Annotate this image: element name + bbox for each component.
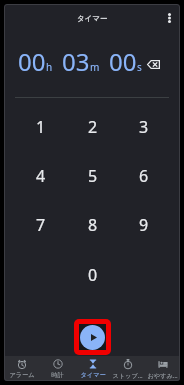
button[interactable]: 8 — [67, 203, 118, 246]
button[interactable]: 3 — [118, 105, 169, 148]
staticText: 4 — [36, 165, 46, 187]
staticText: 3 — [139, 116, 149, 138]
button[interactable]: More options — [161, 10, 177, 26]
staticText: 0 — [88, 264, 98, 286]
button[interactable]: 6 — [118, 154, 169, 197]
button[interactable]: 5 — [67, 154, 118, 197]
staticText: 2 — [88, 116, 98, 138]
button[interactable]: アラーム — [4, 356, 40, 381]
button[interactable]: 1 — [15, 105, 67, 148]
staticText: 1 — [36, 116, 46, 138]
button[interactable]: Delete — [144, 55, 163, 74]
button[interactable]: タイマー — [75, 356, 110, 381]
staticText: 5 — [88, 165, 98, 187]
staticText: h — [46, 60, 53, 74]
button[interactable]: 2 — [67, 105, 118, 148]
staticText: 8 — [88, 214, 98, 236]
staticText: 時計 — [51, 371, 64, 379]
button[interactable]: 時計 — [40, 356, 75, 381]
staticText: 7 — [36, 214, 46, 236]
staticText: s — [137, 60, 142, 74]
staticText: 00 — [109, 45, 137, 78]
staticText: ストップ… — [112, 371, 143, 379]
staticText: アラーム — [9, 371, 35, 379]
button[interactable]: 4 — [15, 154, 67, 197]
staticText: タイマー — [80, 371, 106, 379]
staticText: 6 — [139, 165, 149, 187]
staticText: 03 — [62, 45, 90, 78]
button[interactable]: 7 — [15, 203, 67, 246]
staticText: タイマー — [77, 14, 108, 23]
staticText: おやすみ… — [147, 371, 178, 379]
button[interactable]: おやすみ… — [145, 356, 180, 381]
button[interactable]: 0 — [67, 253, 118, 296]
staticText: m — [90, 60, 100, 74]
button[interactable]: Start timer — [80, 325, 105, 350]
button[interactable]: 9 — [118, 203, 169, 246]
staticText: 00 — [18, 45, 46, 78]
button[interactable]: ストップ… — [110, 356, 145, 381]
staticText: 9 — [139, 214, 149, 236]
